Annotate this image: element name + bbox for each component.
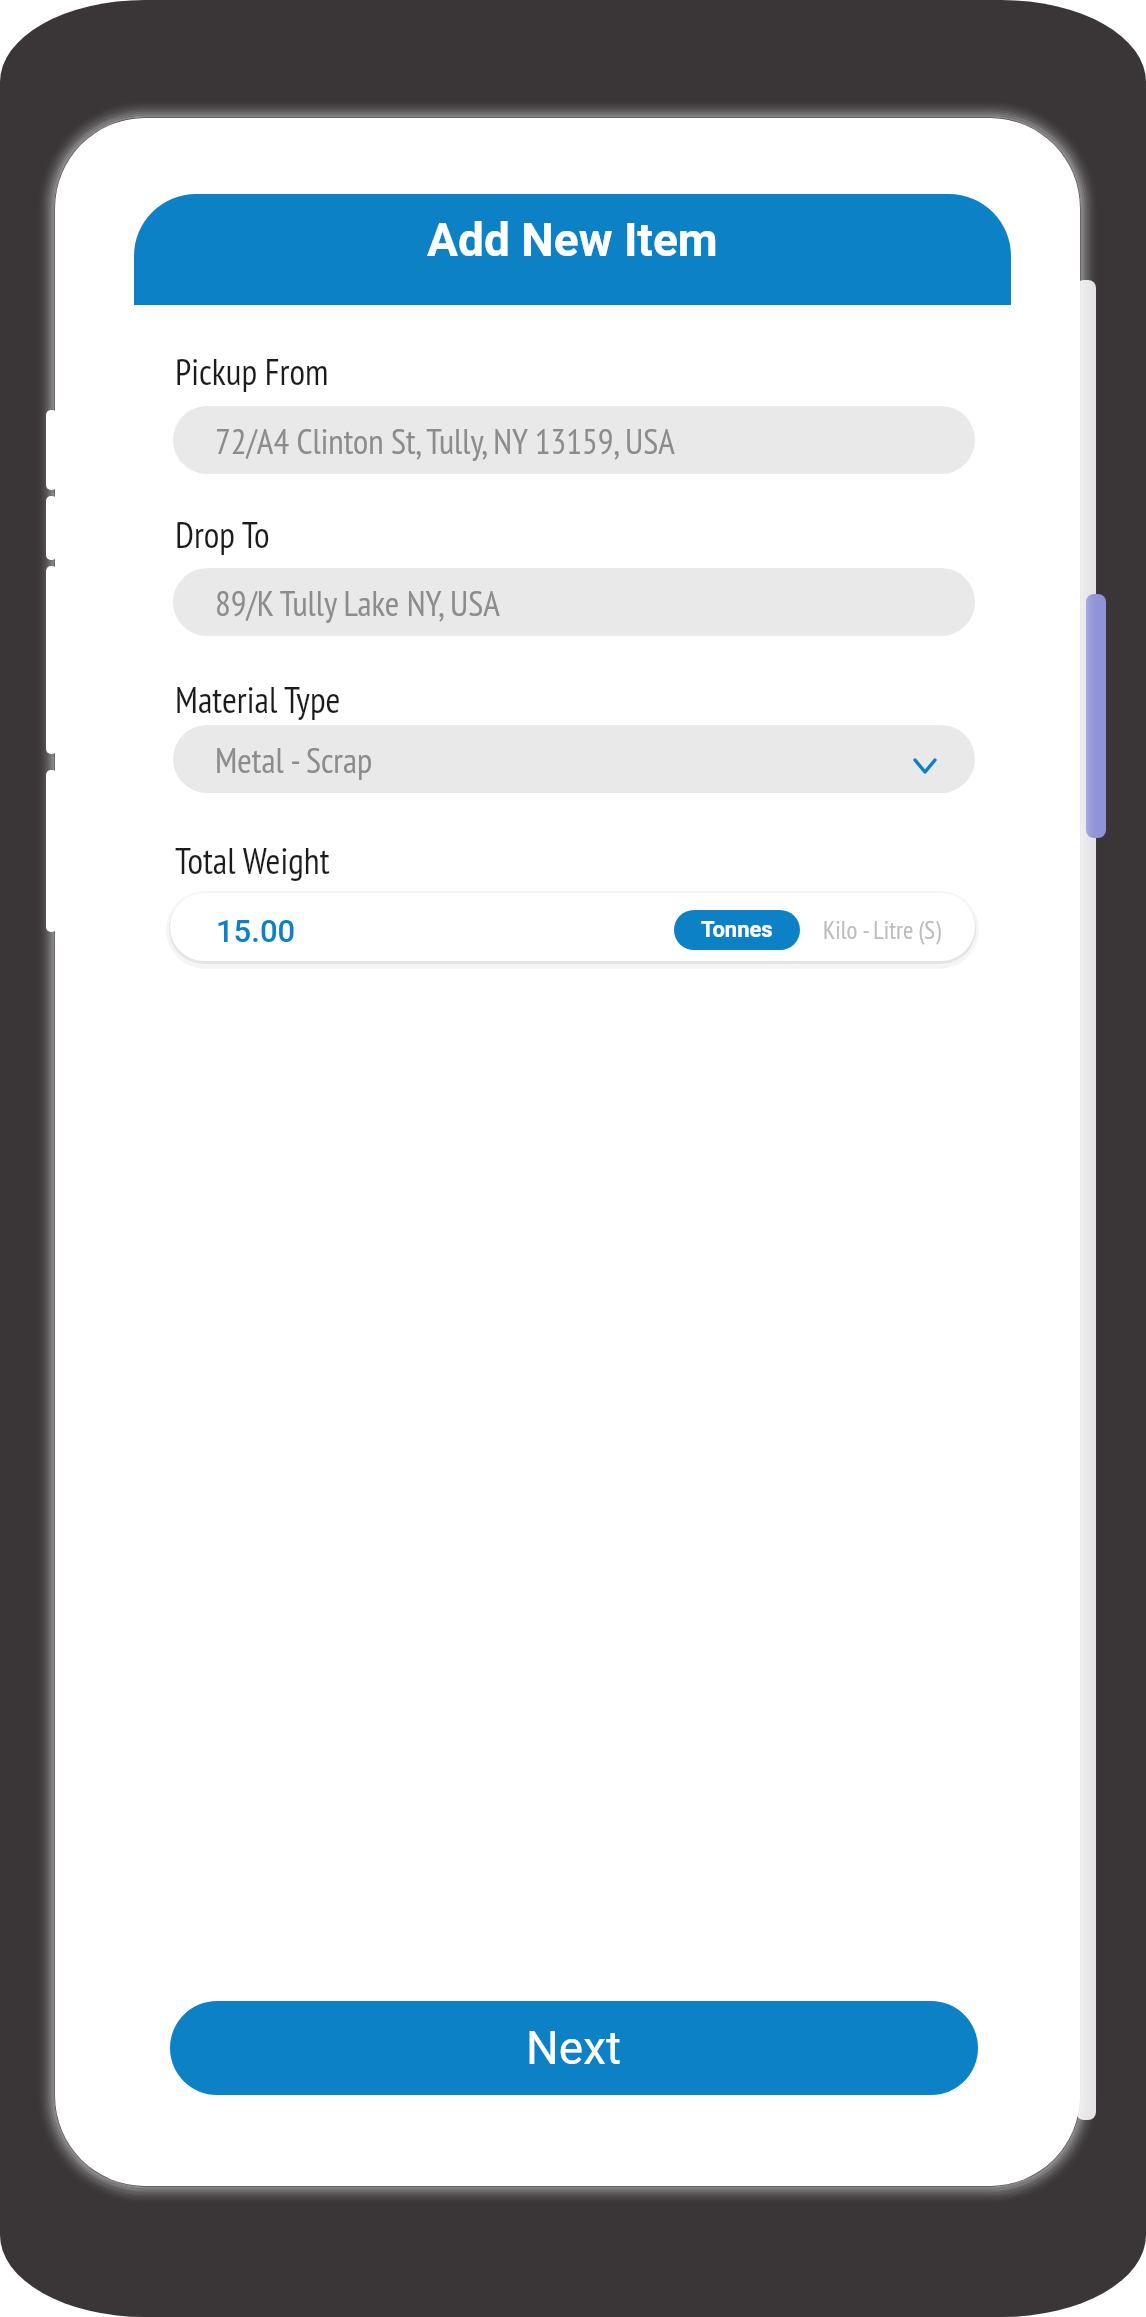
button[interactable]: Metal - Scrap [173, 725, 975, 793]
button[interactable]: 89/K Tully Lake NY, USA [173, 568, 975, 636]
staticText: Material Type [175, 676, 341, 723]
staticText: Tonnes [701, 917, 773, 943]
staticText: 89/K Tully Lake NY, USA [215, 580, 500, 625]
staticText: 72/A4 Clinton St, Tully, NY 13159, USA [215, 418, 675, 463]
staticText: 15.00 [216, 913, 296, 949]
staticText: Next [526, 2021, 622, 2075]
button[interactable]: Kilo - Litre (S) [820, 908, 980, 952]
staticText: Add New Item [427, 213, 718, 267]
staticText: Metal - Scrap [215, 737, 373, 782]
staticText: Total Weight [175, 837, 330, 884]
button[interactable] [170, 893, 975, 961]
staticText: Drop To [175, 511, 270, 558]
staticText: Pickup From [175, 348, 329, 395]
button[interactable]: Tonnes [674, 910, 800, 950]
button[interactable]: Next [170, 2001, 978, 2095]
staticText: Kilo - Litre (S) [823, 914, 941, 946]
button[interactable]: 72/A4 Clinton St, Tully, NY 13159, USA [173, 406, 975, 474]
